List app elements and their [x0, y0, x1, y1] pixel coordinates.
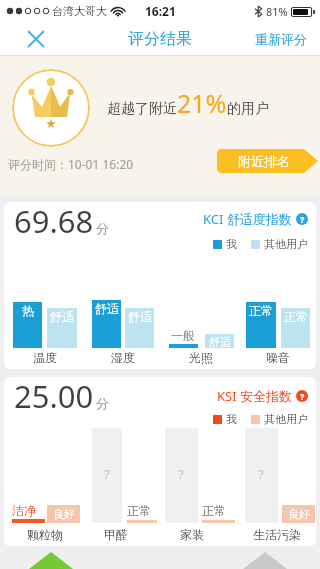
staticText: 16:21: [145, 3, 176, 19]
staticText: 颗粒物: [27, 527, 63, 542]
staticText: 光照: [189, 350, 213, 365]
staticText: 分: [96, 395, 109, 411]
staticText: 舒适: [95, 301, 119, 316]
staticText: 其他用户: [264, 237, 308, 251]
staticText: 一般: [171, 328, 195, 343]
button[interactable]: 重新评分: [255, 31, 307, 47]
staticText: 良好: [288, 507, 310, 521]
staticText: 舒适: [50, 309, 74, 324]
staticText: 洁净: [12, 503, 36, 518]
staticText: 正常: [284, 309, 308, 324]
button[interactable]: ?: [296, 390, 308, 402]
staticText: 21%: [177, 86, 227, 120]
staticText: 69.68: [14, 202, 94, 242]
staticText: 其他用户: [264, 412, 308, 426]
staticText: ?: [178, 465, 184, 483]
staticText: 我: [226, 237, 237, 251]
staticText: ?: [104, 465, 110, 483]
staticText: 附近排名: [238, 153, 290, 169]
staticText: 81%: [266, 4, 288, 19]
staticText: 热: [22, 303, 34, 318]
staticText: 正常: [202, 503, 226, 518]
staticText: 评分时间：10-01 16:20: [8, 156, 134, 172]
staticText: ?: [300, 390, 305, 402]
staticText: 我: [226, 412, 237, 426]
staticText: 的用户: [227, 100, 269, 118]
staticText: 舒适: [209, 335, 231, 348]
staticText: KSI 安全指数: [217, 387, 292, 405]
staticText: ?: [258, 465, 264, 483]
staticText: 良好: [53, 507, 75, 521]
staticText: 湿度: [111, 350, 135, 365]
staticText: 温度: [33, 350, 57, 365]
staticText: 正常: [249, 303, 273, 318]
staticText: 生活污染: [253, 527, 301, 542]
staticText: 噪音: [266, 350, 290, 365]
staticText: 分: [96, 220, 109, 236]
staticText: 超越了附近: [107, 100, 177, 118]
staticText: 家装: [180, 527, 204, 542]
staticText: 正常: [127, 503, 151, 518]
staticText: 舒适: [128, 309, 152, 324]
staticText: 甲醛: [104, 527, 128, 542]
button[interactable]: 附近排名: [217, 149, 318, 173]
button[interactable]: ?: [296, 213, 308, 225]
button[interactable]: [28, 31, 44, 47]
staticText: 评分结果: [128, 29, 192, 49]
staticText: KCI 舒适度指数: [203, 210, 292, 228]
staticText: 台湾大哥大: [52, 4, 107, 18]
staticText: 25.00: [14, 377, 94, 417]
staticText: ?: [300, 213, 305, 225]
